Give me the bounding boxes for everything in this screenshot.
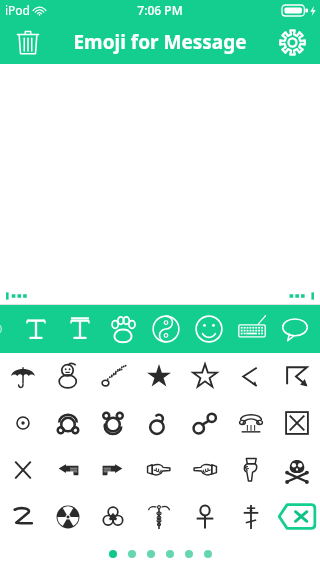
- button[interactable]: Delete: [274, 493, 320, 540]
- staticText: iPod: [5, 2, 30, 18]
- button[interactable]: Z: [0, 493, 45, 540]
- button[interactable]: Outline letters: [58, 305, 101, 353]
- button[interactable]: Animals: [101, 305, 144, 353]
- button[interactable]: Symbols: [144, 305, 187, 353]
- button[interactable]: Keyboard: [230, 305, 273, 353]
- button[interactable]: Hand right: [136, 446, 182, 493]
- button[interactable]: Page 5: [185, 550, 193, 558]
- button[interactable]: Next page: [286, 288, 316, 304]
- button[interactable]: Radioactive: [45, 493, 90, 540]
- button[interactable]: Comet: [90, 353, 136, 399]
- button[interactable]: Page 2: [128, 550, 136, 558]
- button[interactable]: X mark: [0, 446, 45, 493]
- button[interactable]: Smileys: [187, 305, 230, 353]
- button[interactable]: Messages: [273, 305, 316, 353]
- button[interactable]: Previous page: [4, 288, 34, 304]
- button[interactable]: Delete all: [8, 22, 48, 62]
- button[interactable]: Symbol: [45, 399, 90, 446]
- button[interactable]: Page 6: [204, 550, 212, 558]
- button[interactable]: Snowman: [45, 353, 90, 399]
- staticText: 7:06 PM: [137, 2, 183, 18]
- button[interactable]: Pointing left: [45, 446, 90, 493]
- staticText: Emoji for Message: [73, 29, 247, 55]
- button[interactable]: Page 1: [109, 550, 117, 558]
- button[interactable]: Telephone: [228, 399, 274, 446]
- button[interactable]: Symbol: [182, 399, 228, 446]
- button[interactable]: Pointing right: [90, 446, 136, 493]
- button[interactable]: Page 4: [166, 550, 174, 558]
- button[interactable]: Star: [182, 353, 228, 399]
- button[interactable]: Boxed X: [274, 399, 320, 446]
- button[interactable]: Serif letters: [14, 305, 58, 353]
- button[interactable]: Sun: [0, 399, 45, 446]
- button[interactable]: Arrow: [228, 353, 274, 399]
- button[interactable]: Corner arrow: [274, 353, 320, 399]
- button[interactable]: Mars: [136, 399, 182, 446]
- button[interactable]: Ankh: [182, 493, 228, 540]
- button[interactable]: Page 3: [147, 550, 155, 558]
- button[interactable]: Symbol: [90, 399, 136, 446]
- button[interactable]: Hand left: [182, 446, 228, 493]
- button[interactable]: Settings: [272, 22, 312, 62]
- button[interactable]: Caduceus: [136, 493, 182, 540]
- button[interactable]: Cross: [228, 493, 274, 540]
- button[interactable]: Umbrella: [0, 353, 45, 399]
- button[interactable]: Filled star: [136, 353, 182, 399]
- button[interactable]: Previous category: [0, 305, 14, 353]
- button[interactable]: Skull: [274, 446, 320, 493]
- button[interactable]: Biohazard: [90, 493, 136, 540]
- button[interactable]: Hand down: [228, 446, 274, 493]
